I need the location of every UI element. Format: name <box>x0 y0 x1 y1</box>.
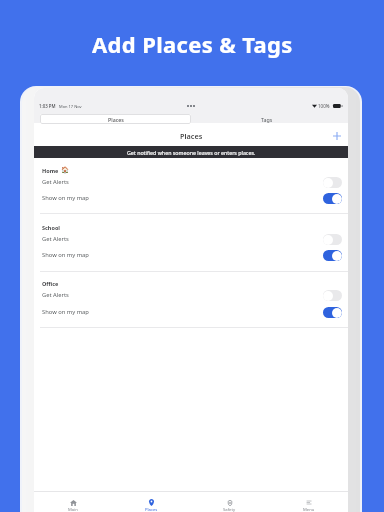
button[interactable]: Get Alerts <box>34 175 348 189</box>
staticText: Get notified when someone leaves or ente… <box>127 149 256 156</box>
button[interactable]: Places <box>112 492 190 512</box>
staticText: Office <box>42 280 59 287</box>
button[interactable]: Places <box>40 114 191 124</box>
staticText: Places <box>108 116 124 123</box>
staticText: Safety <box>223 507 236 512</box>
staticText: 1:03 PM <box>39 103 56 109</box>
staticText: Places <box>180 131 203 141</box>
staticText: Get Alerts <box>42 178 69 186</box>
staticText: School <box>42 224 60 231</box>
button[interactable]: Add place <box>330 129 344 143</box>
button[interactable]: Get Alerts <box>34 232 348 246</box>
staticText: Get Alerts <box>42 235 69 243</box>
staticText: Home <box>42 167 59 174</box>
staticText: 🏠 <box>61 166 70 174</box>
button[interactable]: Get Alerts <box>34 288 348 302</box>
staticText: Show on my map <box>42 308 89 316</box>
button[interactable]: Safety <box>190 492 269 512</box>
staticText: Mon 17 Nov <box>59 104 82 109</box>
button[interactable]: Show on my map <box>34 305 348 319</box>
staticText: Show on my map <box>42 194 89 202</box>
button[interactable]: Tags <box>191 114 342 124</box>
button[interactable]: Show on my map <box>34 248 348 262</box>
staticText: Get Alerts <box>42 291 69 299</box>
button[interactable]: Main <box>34 492 112 512</box>
button[interactable]: Menu <box>269 492 348 512</box>
staticText: Tags <box>261 116 273 123</box>
staticText: Add Places & Tags <box>92 29 293 59</box>
staticText: Menu <box>303 507 315 512</box>
button[interactable]: Show on my map <box>34 191 348 205</box>
staticText: Places <box>145 507 158 512</box>
staticText: Main <box>68 507 78 512</box>
staticText: Show on my map <box>42 251 89 259</box>
staticText: 100% <box>318 103 330 109</box>
